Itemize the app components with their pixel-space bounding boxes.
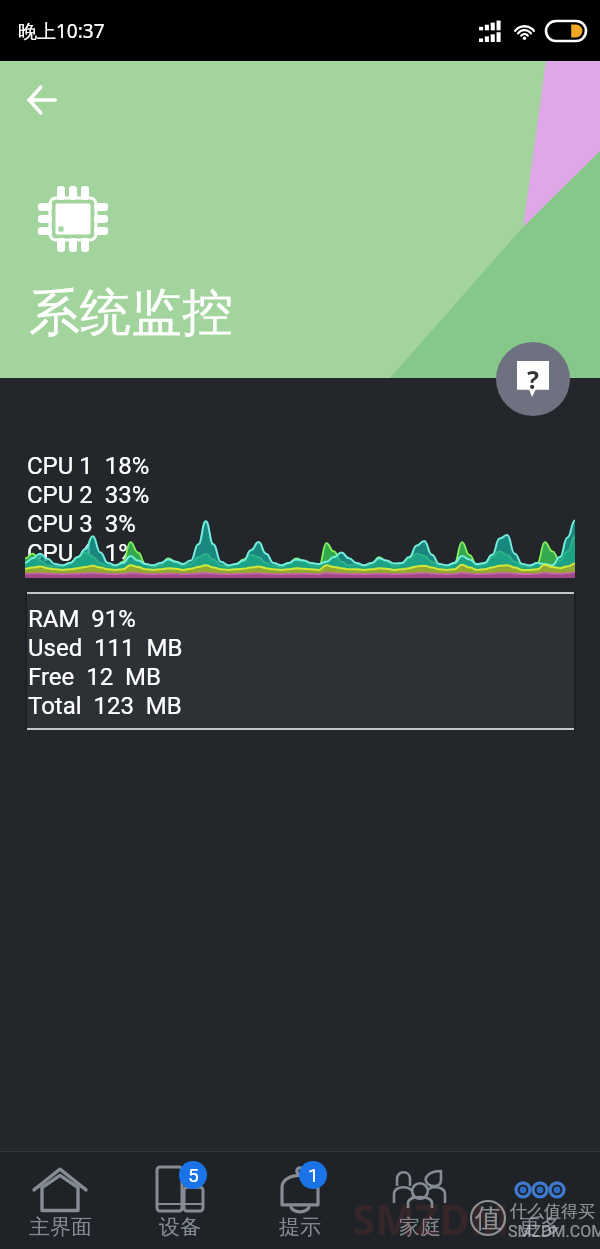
staticText: CPU 1 18% xyxy=(27,452,150,480)
staticText: 什么值得买 xyxy=(510,1201,595,1222)
staticText: 设备 xyxy=(159,1214,201,1240)
button[interactable]: 更多 xyxy=(480,1152,600,1249)
staticText: Free 12 MB xyxy=(28,663,162,691)
staticText: SMZDM.COM xyxy=(508,1222,600,1241)
staticText: CPU 4 1% xyxy=(27,539,136,567)
staticText: 值 xyxy=(475,1202,501,1235)
staticText: CPU 3 3% xyxy=(27,510,136,538)
staticText: SMZDM xyxy=(352,1190,510,1247)
button[interactable]: 5 xyxy=(120,1152,240,1249)
button[interactable]: 主界面 xyxy=(0,1152,120,1249)
staticText: Used 111 MB xyxy=(28,634,183,662)
staticText: 系统监控 xyxy=(29,281,233,345)
staticText: 晚上10:37 xyxy=(18,18,105,44)
button[interactable]: Help xyxy=(496,342,570,416)
staticText: 家庭 xyxy=(399,1214,441,1240)
button[interactable]: 1 xyxy=(240,1152,360,1249)
button[interactable]: Back xyxy=(14,72,70,128)
staticText: 主界面 xyxy=(29,1214,92,1240)
staticText: Total 123 MB xyxy=(28,692,182,720)
staticText: 更多 xyxy=(519,1214,561,1240)
staticText: ? xyxy=(527,362,539,396)
staticText: CPU 2 33% xyxy=(27,481,150,509)
staticText: 5 xyxy=(188,1164,199,1186)
button[interactable]: 家庭 xyxy=(360,1152,480,1249)
staticText: 1 xyxy=(308,1164,319,1186)
staticText: 提示 xyxy=(279,1214,321,1240)
staticText: RAM 91% xyxy=(28,605,136,633)
